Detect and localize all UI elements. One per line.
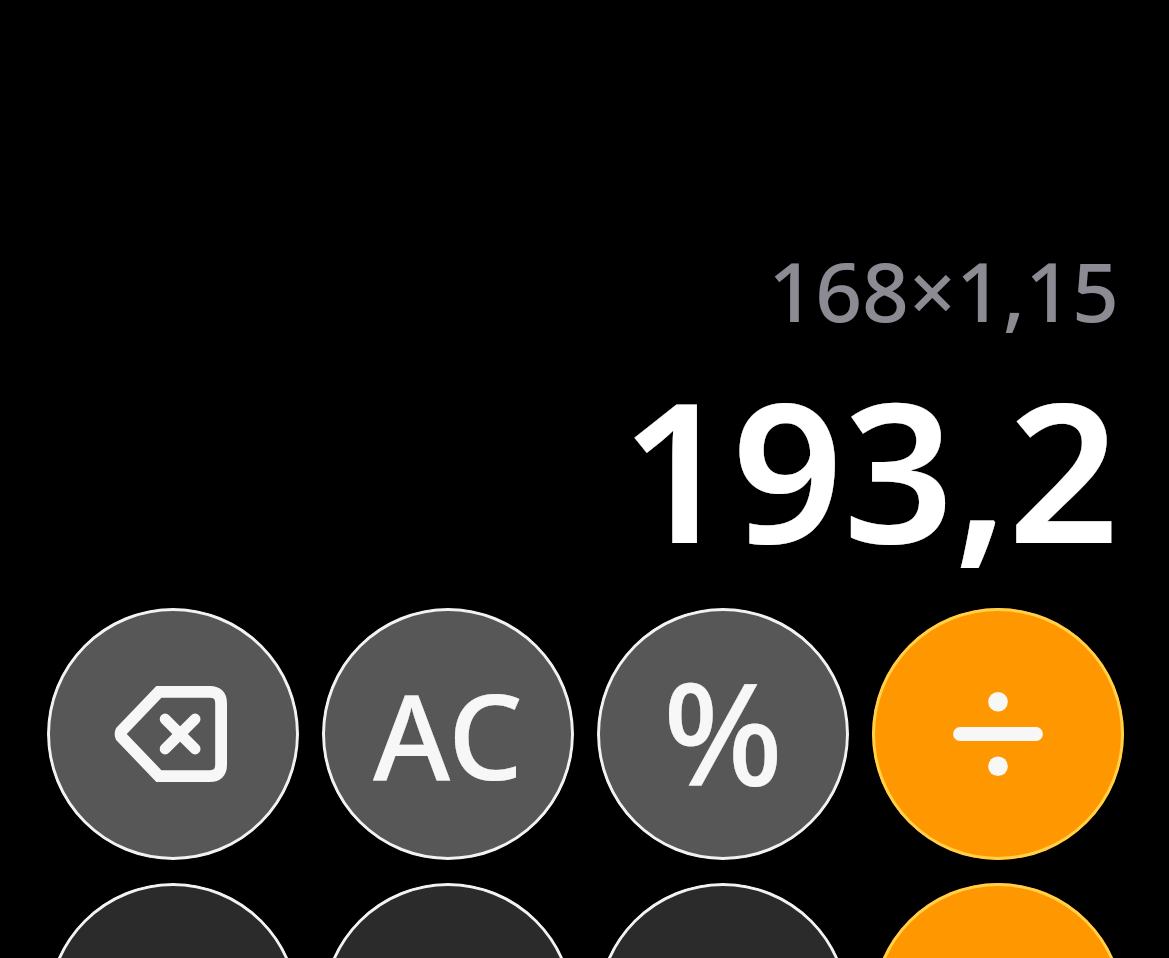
- button[interactable]: Backspace: [47, 608, 299, 860]
- button[interactable]: 9: [597, 883, 849, 958]
- button[interactable]: Multiply: [872, 883, 1124, 958]
- staticText: 168×1,15: [768, 234, 1119, 346]
- button[interactable]: 7: [47, 883, 299, 958]
- staticText: 193,2: [621, 336, 1119, 600]
- button[interactable]: 8: [322, 883, 574, 958]
- button[interactable]: AC: [322, 608, 574, 860]
- staticText: AC: [373, 654, 523, 815]
- button[interactable]: Divide: [872, 608, 1124, 860]
- button[interactable]: %: [597, 608, 849, 860]
- staticText: %: [663, 635, 784, 827]
